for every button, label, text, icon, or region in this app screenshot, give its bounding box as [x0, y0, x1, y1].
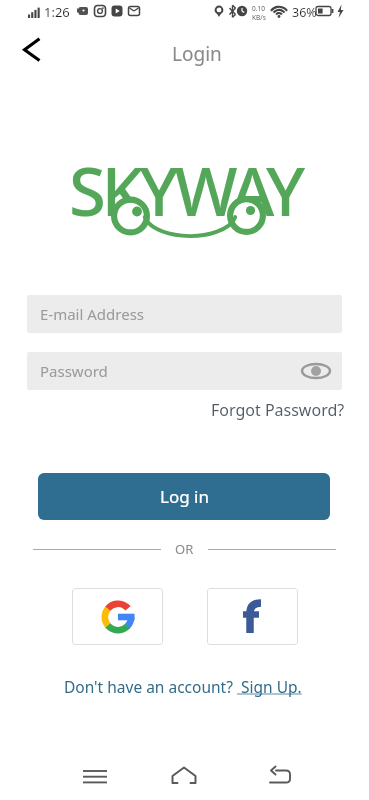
staticText: Password: [40, 361, 108, 381]
staticText: 36%: [292, 4, 317, 21]
staticText: OR: [175, 540, 194, 558]
button[interactable]: Forgot Password?: [211, 399, 345, 421]
staticText: SKYWAY: [69, 144, 301, 235]
button[interactable]: Log in: [38, 473, 330, 520]
button[interactable]: [154, 756, 214, 799]
staticText: Login: [172, 41, 222, 67]
staticText: 0.10: [252, 4, 265, 13]
button[interactable]: [22, 37, 42, 63]
button[interactable]: Password: [27, 352, 342, 390]
staticText: KB/s: [252, 13, 266, 22]
button[interactable]: [302, 363, 330, 379]
button[interactable]: [250, 756, 310, 799]
staticText: E-mail Address: [40, 304, 145, 324]
button[interactable]: [65, 756, 125, 799]
button[interactable]: Sign Up.: [237, 676, 306, 697]
staticText: Log in: [160, 485, 209, 508]
button[interactable]: [72, 588, 163, 645]
staticText: Don't have an account?: [64, 676, 237, 697]
button[interactable]: E-mail Address: [27, 295, 342, 333]
button[interactable]: [207, 588, 298, 645]
staticText: 1:26: [44, 3, 70, 21]
